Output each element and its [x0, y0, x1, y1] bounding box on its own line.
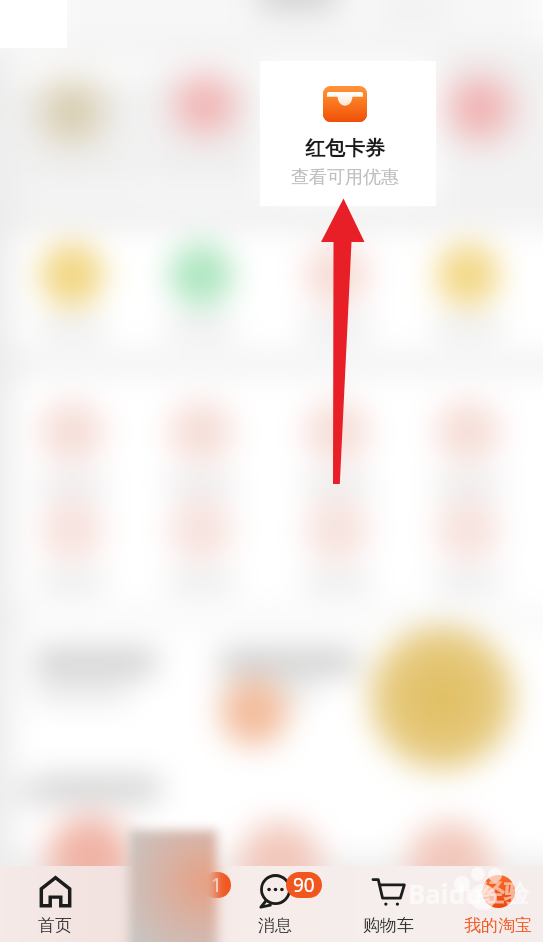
staticText: 消息 [258, 915, 292, 936]
staticText: 经验 [479, 878, 529, 909]
button[interactable]: My Taobao [444, 866, 543, 942]
button[interactable]: Messages [221, 866, 329, 942]
staticText: 1 [211, 872, 222, 898]
staticText: 购物车 [363, 915, 414, 936]
button[interactable]: Weitao [112, 866, 220, 942]
button[interactable]: Cart [334, 866, 442, 942]
staticText: 90 [293, 872, 315, 898]
staticText: 微淘 [149, 915, 183, 936]
staticText: 首页 [38, 915, 72, 936]
staticText: 查看可用优惠 [291, 166, 399, 189]
staticText: 红包卡券 [305, 136, 385, 161]
staticText: 我的淘宝 [464, 915, 532, 936]
button[interactable]: Home [1, 866, 109, 942]
button[interactable]: 红包卡券 [260, 61, 436, 206]
staticText: Baidu [408, 876, 482, 911]
